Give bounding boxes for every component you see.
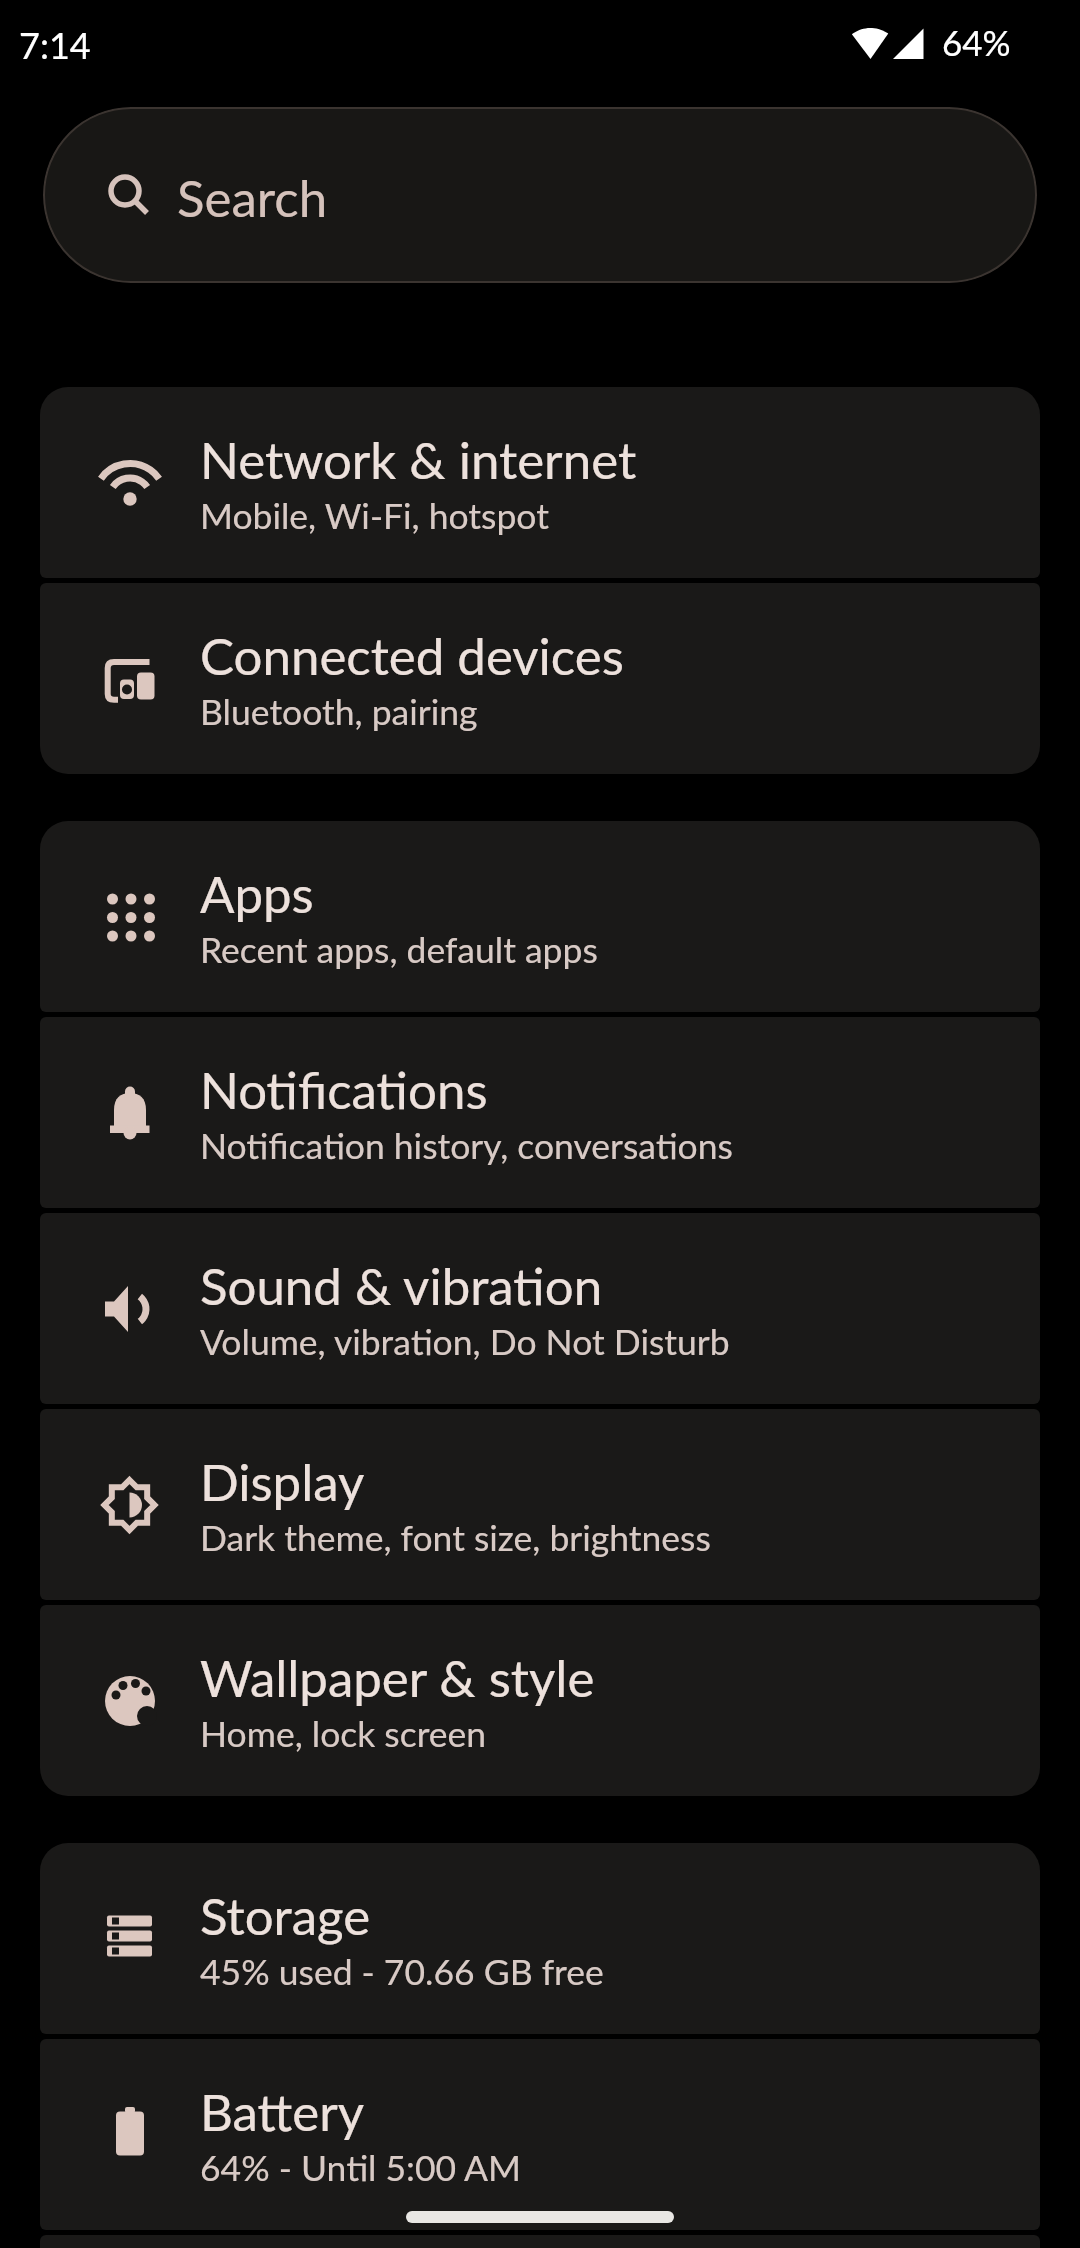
staticText: Apps bbox=[200, 863, 314, 924]
staticText: 64% bbox=[942, 21, 1011, 63]
button[interactable]: Connected devices bbox=[40, 583, 1040, 774]
button[interactable]: Display bbox=[40, 1409, 1040, 1600]
button[interactable]: Apps bbox=[40, 821, 1040, 1012]
staticText: Volume, vibration, Do Not Disturb bbox=[200, 1320, 730, 1363]
staticText: Search bbox=[177, 167, 328, 228]
staticText: Dark theme, font size, brightness bbox=[200, 1516, 711, 1559]
button[interactable]: Search bbox=[43, 107, 1037, 283]
button[interactable]: Battery bbox=[40, 2039, 1040, 2230]
staticText: 64% - Until 5:00 AM bbox=[200, 2146, 522, 2189]
staticText: Mobile, Wi-Fi, hotspot bbox=[200, 494, 549, 537]
staticText: Recent apps, default apps bbox=[200, 928, 598, 971]
staticText: 45% used - 70.66 GB free bbox=[200, 1950, 604, 1993]
button[interactable]: Wallpaper & style bbox=[40, 1605, 1040, 1796]
button[interactable]: Sound & vibration bbox=[40, 1213, 1040, 1404]
staticText: 7:14 bbox=[19, 23, 91, 66]
staticText: Notifications bbox=[200, 1059, 488, 1120]
staticText: Notification history, conversations bbox=[200, 1124, 733, 1167]
staticText: Connected devices bbox=[200, 625, 624, 686]
staticText: Sound & vibration bbox=[200, 1255, 603, 1316]
staticText: Wallpaper & style bbox=[200, 1647, 595, 1708]
staticText: Storage bbox=[200, 1885, 371, 1946]
staticText: Display bbox=[200, 1451, 365, 1512]
button[interactable]: Network & internet bbox=[40, 387, 1040, 578]
button[interactable]: Notifications bbox=[40, 1017, 1040, 1208]
staticText: Network & internet bbox=[200, 429, 637, 490]
staticText: Bluetooth, pairing bbox=[200, 690, 478, 733]
staticText: Battery bbox=[200, 2081, 365, 2142]
button[interactable]: Storage bbox=[40, 1843, 1040, 2034]
staticText: Home, lock screen bbox=[200, 1712, 487, 1755]
